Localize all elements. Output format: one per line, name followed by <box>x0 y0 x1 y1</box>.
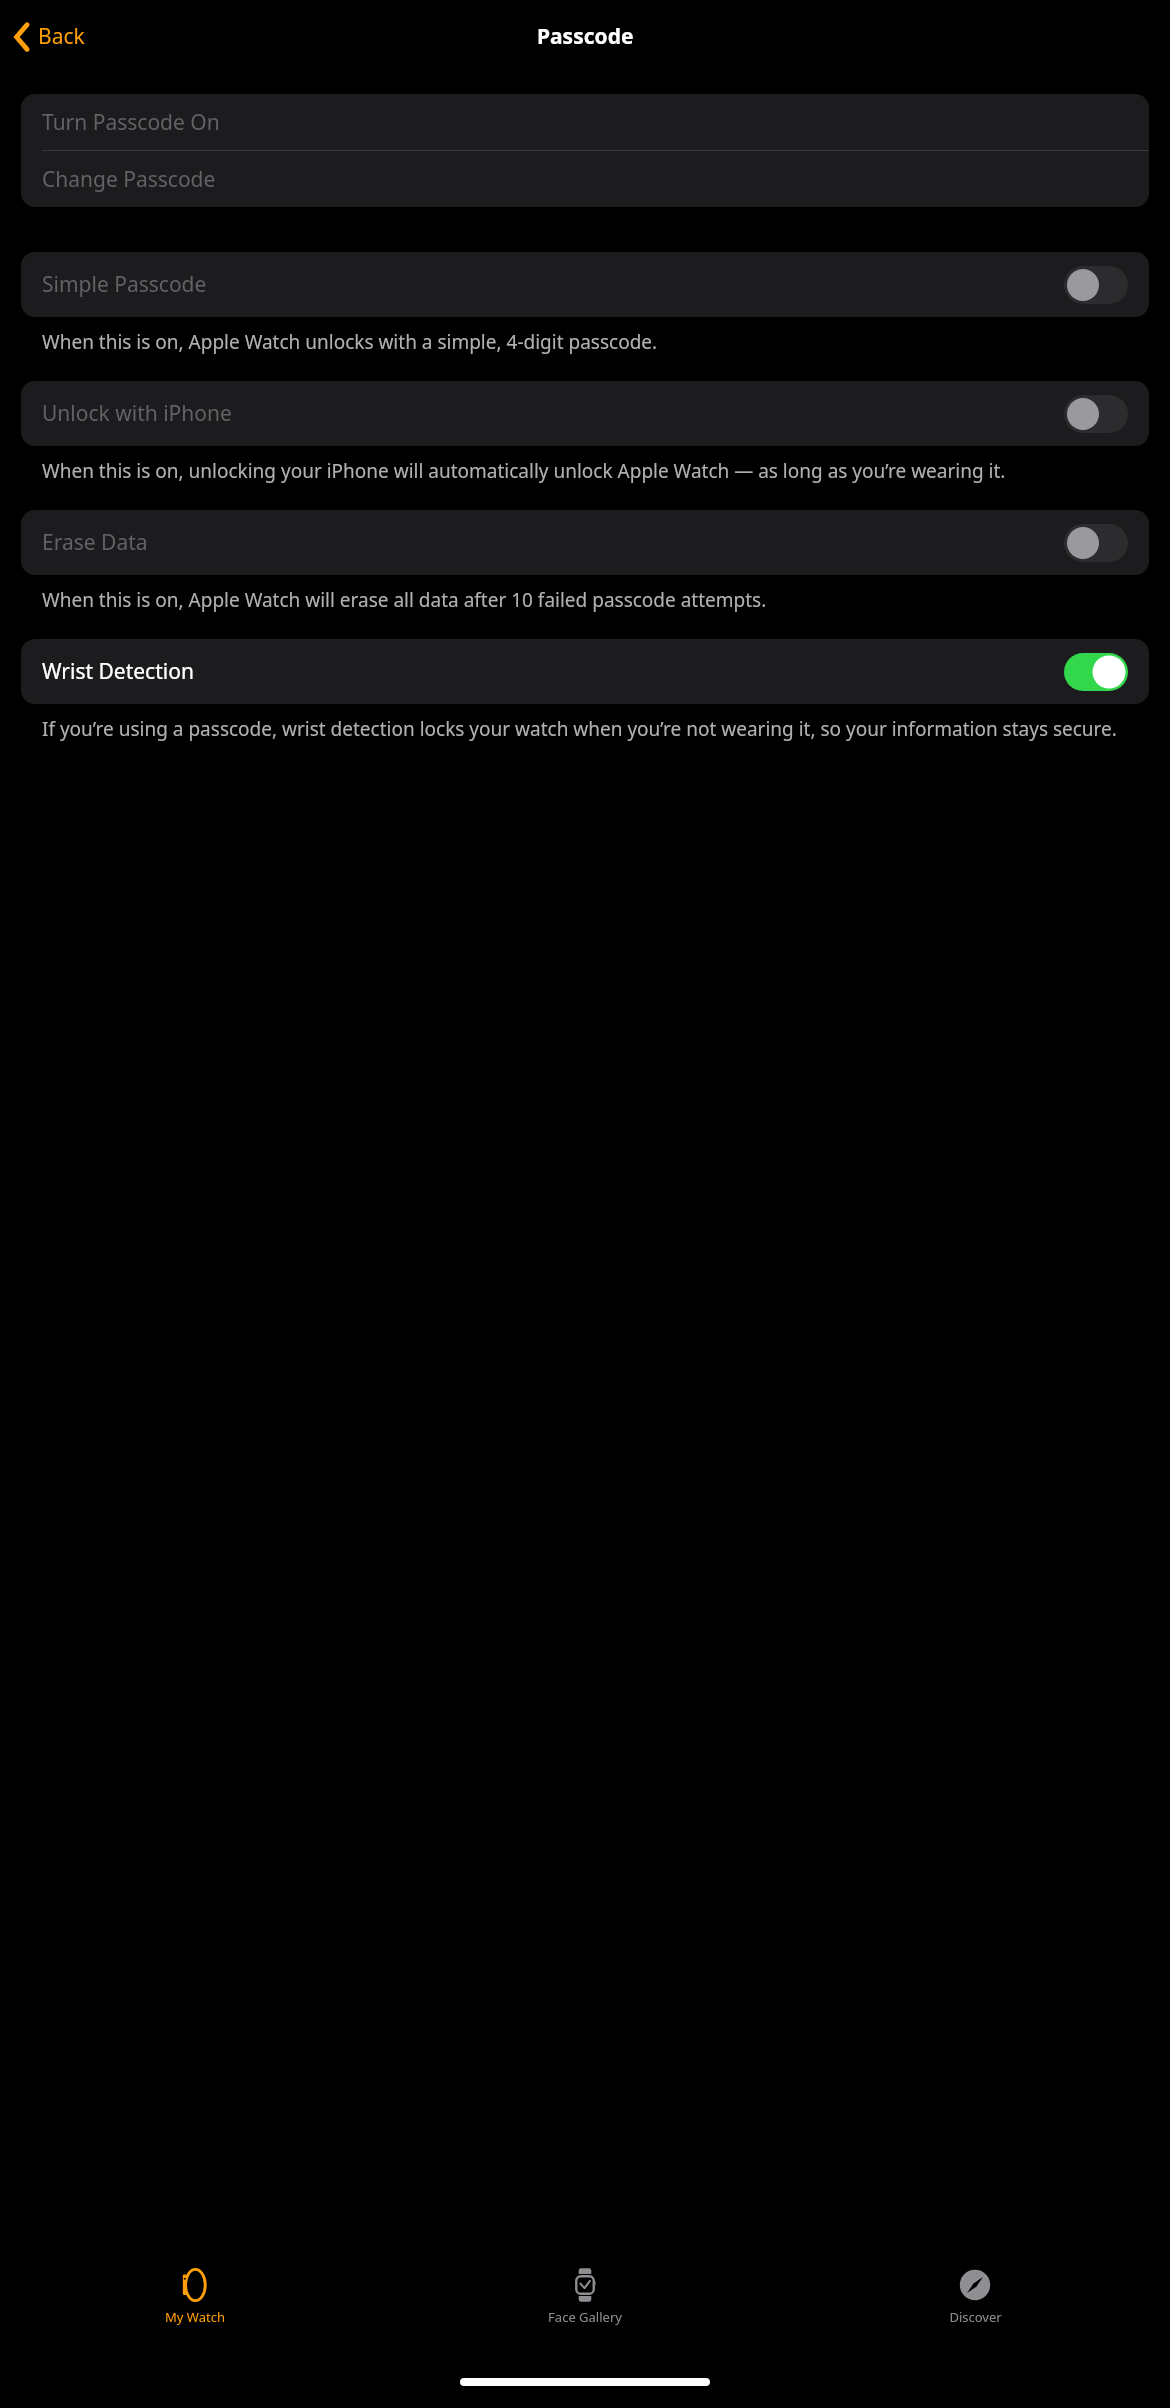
button[interactable]: Toggle off <box>1064 524 1128 562</box>
button[interactable]: Discover <box>780 2258 1170 2374</box>
staticText: Erase Data <box>42 528 148 557</box>
staticText: Change Passcode <box>42 165 216 194</box>
staticText: When this is on, unlocking your iPhone w… <box>42 458 1006 484</box>
button[interactable]: Back <box>8 16 91 57</box>
button[interactable]: Unlock with iPhone <box>21 381 1149 446</box>
staticText: When this is on, Apple Watch will erase … <box>42 587 767 613</box>
staticText: Unlock with iPhone <box>42 399 232 428</box>
button[interactable]: Toggle on <box>1064 653 1128 691</box>
staticText: Turn Passcode On <box>42 108 220 137</box>
staticText: Simple Passcode <box>42 270 207 299</box>
staticText: Back <box>38 22 85 51</box>
button[interactable]: Face Gallery <box>390 2258 780 2374</box>
button[interactable]: Erase Data <box>21 510 1149 575</box>
staticText: Discover <box>949 2308 1002 2326</box>
staticText: Passcode <box>537 22 634 51</box>
staticText: My Watch <box>165 2308 225 2326</box>
button[interactable]: My Watch <box>0 2258 390 2374</box>
button[interactable]: Turn Passcode On <box>21 94 1149 150</box>
staticText: When this is on, Apple Watch unlocks wit… <box>42 329 658 355</box>
button[interactable]: Wrist Detection <box>21 639 1149 704</box>
button[interactable]: Change Passcode <box>21 151 1149 207</box>
staticText: Wrist Detection <box>42 657 194 686</box>
staticText: Face Gallery <box>548 2308 622 2326</box>
button[interactable]: Simple Passcode <box>21 252 1149 317</box>
button[interactable]: Toggle off <box>1064 266 1128 304</box>
button[interactable]: Toggle off <box>1064 395 1128 433</box>
staticText: If you’re using a passcode, wrist detect… <box>42 716 1117 742</box>
